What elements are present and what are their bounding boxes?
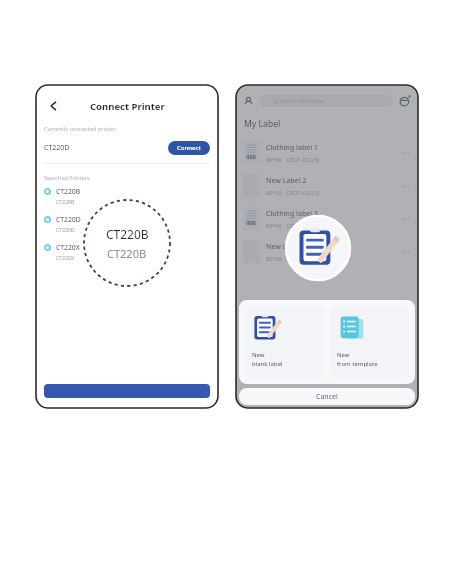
button[interactable]: Clothing label 1 <box>236 136 418 169</box>
staticText: CT220D <box>44 143 70 153</box>
staticText: (2021-02-23) <box>287 222 320 229</box>
button[interactable]: Connect <box>168 141 210 155</box>
button[interactable]: Confirm <box>44 384 210 398</box>
staticText: CT220D <box>56 215 81 224</box>
staticText: (2021-02-23) <box>287 156 320 163</box>
button[interactable]: CT220B <box>36 187 218 205</box>
staticText: 60*40 <box>266 222 282 229</box>
button[interactable]: More <box>401 214 411 224</box>
staticText: New <box>252 351 265 359</box>
staticText: Clothing label 1 <box>266 143 319 153</box>
button[interactable]: Cancel <box>239 388 415 405</box>
button[interactable]: Printer status <box>399 95 411 107</box>
staticText: Clothing label 3 <box>266 209 319 219</box>
button[interactable]: Back <box>42 96 62 116</box>
button[interactable]: New <box>245 306 324 378</box>
staticText: blank label <box>252 360 283 368</box>
staticText: CT220D <box>56 226 75 233</box>
staticText: (2021-02-23) <box>287 255 320 262</box>
staticText: CT220B <box>106 226 149 242</box>
staticText: (2021-02-23) <box>287 189 320 196</box>
button[interactable]: More <box>401 148 411 158</box>
staticText: Searched Printers <box>44 174 90 181</box>
staticText: from template <box>337 360 378 368</box>
staticText: Currently connected printer <box>44 125 116 132</box>
button[interactable]: More <box>401 181 411 191</box>
button[interactable]: New Label 2 <box>236 169 418 202</box>
staticText: CT220B <box>56 198 75 205</box>
staticText: Connect Printer <box>90 100 165 113</box>
staticText: My Label <box>244 118 281 130</box>
staticText: Cancel <box>316 392 338 402</box>
button[interactable]: Account <box>243 96 254 107</box>
button[interactable]: New <box>330 306 409 378</box>
staticText: 80*30 <box>266 189 282 196</box>
staticText: New Label 2 <box>266 176 307 186</box>
staticText: 80*50 <box>266 156 282 163</box>
staticText: CT220X <box>56 243 80 252</box>
button[interactable]: More <box>401 247 411 257</box>
staticText: CT220X <box>56 254 75 261</box>
staticText: CT220B <box>107 246 147 261</box>
button[interactable]: New Label 4 <box>236 235 418 268</box>
staticText: 80*30 <box>266 255 282 262</box>
staticText: CT220B <box>56 187 81 196</box>
button[interactable]: CT220D <box>36 215 218 233</box>
staticText: Search label name <box>280 98 324 105</box>
button[interactable]: CT220X <box>36 243 218 261</box>
staticText: New Label 4 <box>266 242 307 252</box>
button[interactable]: Clothing label 3 <box>236 202 418 235</box>
staticText: New <box>337 351 350 359</box>
button[interactable]: Search label name <box>259 95 393 107</box>
staticText: Connect <box>177 144 201 152</box>
